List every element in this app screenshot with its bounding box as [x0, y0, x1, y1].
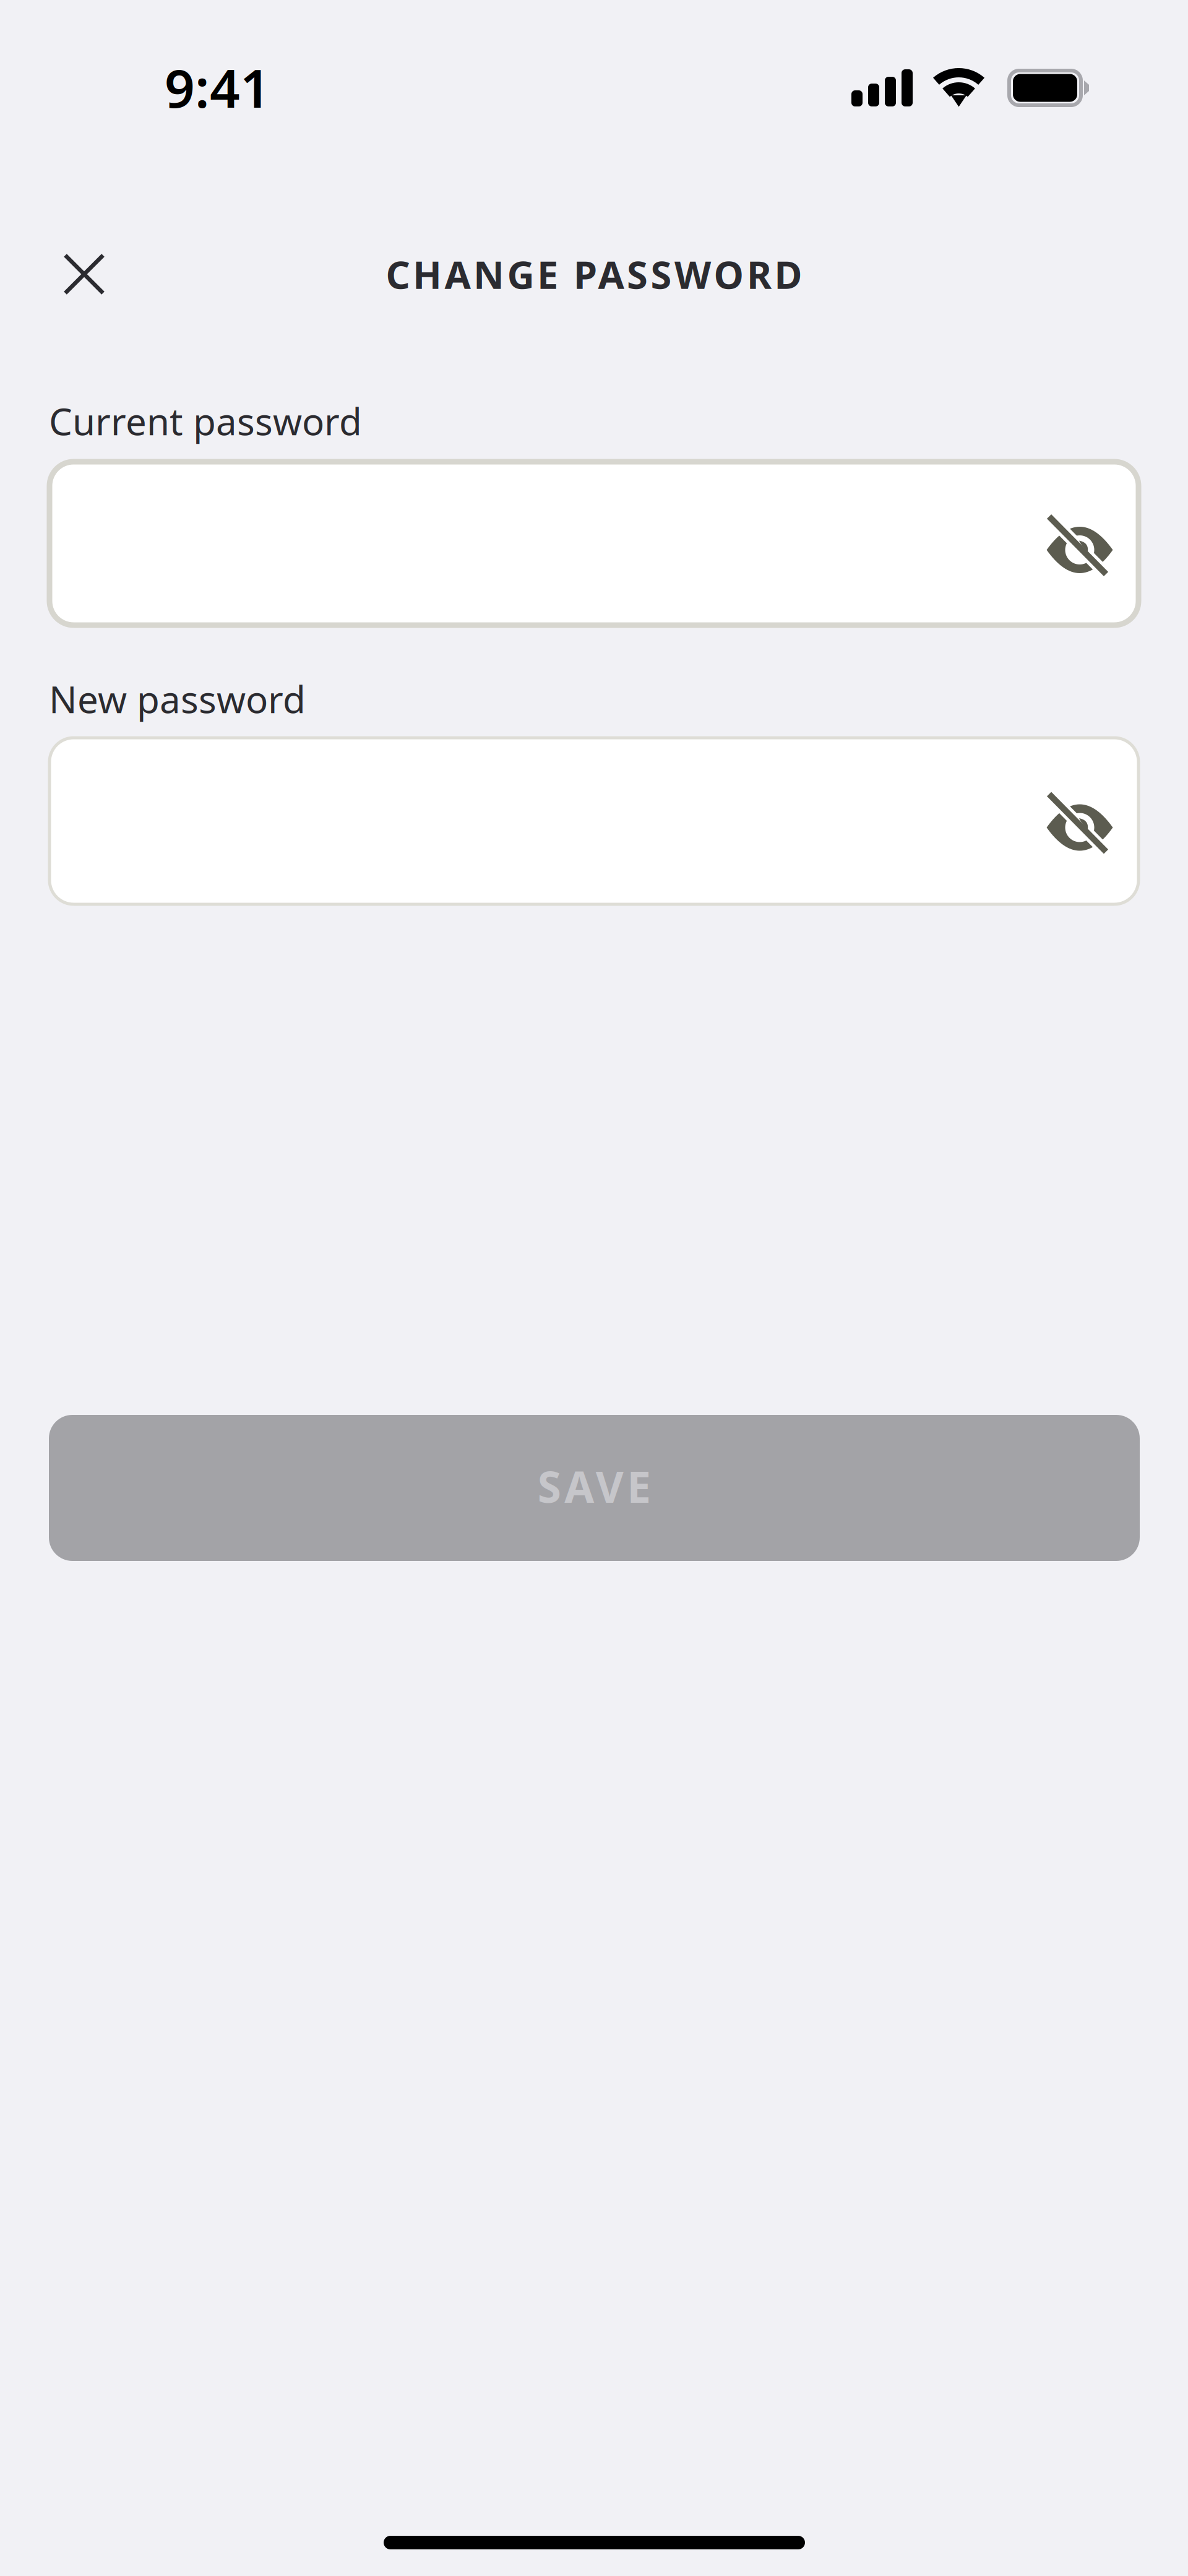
button[interactable]: SAVE	[49, 1415, 1140, 1561]
staticText: 9:41	[165, 52, 270, 122]
staticText: New password	[49, 674, 306, 723]
staticText: Current password	[49, 396, 362, 446]
staticText: CHANGE PASSWORD	[386, 249, 802, 299]
button[interactable]: Close	[43, 233, 125, 315]
button[interactable]: Show password	[1021, 462, 1138, 625]
staticText: SAVE	[538, 1458, 651, 1515]
button[interactable]: Show password	[1021, 738, 1138, 904]
